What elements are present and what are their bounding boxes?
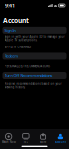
button[interactable]: Watch Now [0,133,17,143]
staticText: Receive recommendations based on your vi… [4,82,61,89]
staticText: Sign In [4,28,15,33]
staticText: 9:41 [5,2,15,9]
button[interactable]: Store [34,133,52,143]
button[interactable]: Turn Off Recommendations [2,72,66,79]
button[interactable]: Sign In [2,27,66,34]
staticText: Redeem [4,53,18,59]
button[interactable]: TV+ [17,133,34,143]
staticText: Watch Now [2,140,16,144]
button[interactable]: Redeem [2,52,66,59]
staticText: Account [55,140,66,144]
staticText: Turn Off Recommendations [4,73,52,78]
staticText: Store [40,140,47,144]
staticText: APPLE TV CHANNELS [4,45,30,48]
staticText: Sign in with your Apple ID to manage you… [4,35,64,42]
staticText: Account [3,16,29,25]
staticText: PERSONALIZED RECOMMENDATIONS [4,64,49,68]
staticText: TV+ [23,140,28,144]
button[interactable]: Account [52,133,69,143]
